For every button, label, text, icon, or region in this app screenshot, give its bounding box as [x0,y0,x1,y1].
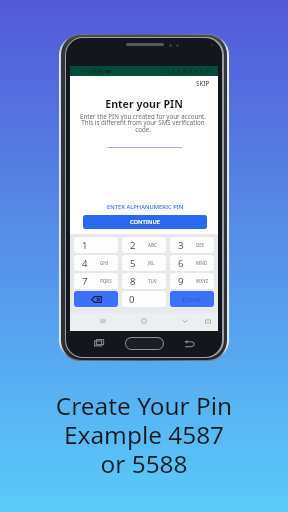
button[interactable]: 5 [122,255,166,271]
staticText: 0 [129,293,135,306]
button[interactable]: 3 [170,237,214,253]
staticText: CONTINUE [130,218,160,226]
button[interactable]: 4 [74,255,118,271]
button[interactable]: 2 [122,237,166,253]
staticText: TUV [148,278,157,284]
staticText: Enter the PIN you created for your accou… [77,112,209,134]
staticText: SKIP [196,79,210,87]
staticText: 6 [178,257,184,270]
staticText: JKL [148,260,155,266]
staticText: 1 [82,239,88,252]
button[interactable]: Recent apps [94,339,104,346]
button[interactable]: 6 [170,255,214,271]
staticText: Done [182,294,202,304]
staticText: WXYZ [196,278,209,284]
button[interactable]: Done [170,291,214,307]
staticText: DEF [196,242,205,248]
staticText: 2 [130,239,136,252]
button[interactable]: Back [184,340,195,347]
button[interactable]: 7 [74,273,118,289]
staticText: 3 [178,239,184,252]
button[interactable]: ENTER ALPHANUMERIC PIN [103,201,188,213]
staticText: ENTER ALPHANUMERIC PIN [107,203,184,211]
staticText: 8 [130,275,136,288]
staticText: 5 [130,257,136,270]
staticText: Create Your Pin Example 4587 or 5588 [0,389,288,480]
button[interactable]: 9 [170,273,214,289]
button[interactable]: Backspace [74,291,118,307]
staticText: ABC [148,242,157,248]
staticText: GHI [100,260,109,266]
button[interactable]: SKIP [192,77,214,89]
staticText: PQRS [100,278,112,284]
staticText: MNO [196,260,208,266]
staticText: 4 [82,257,88,270]
button[interactable]: 8 [122,273,166,289]
button[interactable]: 0 [122,291,166,307]
staticText: 9 [178,275,184,288]
staticText: 7 [82,275,88,288]
staticText: Enter your PIN [70,97,218,111]
button[interactable]: CONTINUE [83,215,207,229]
button[interactable]: 1 [74,237,118,253]
